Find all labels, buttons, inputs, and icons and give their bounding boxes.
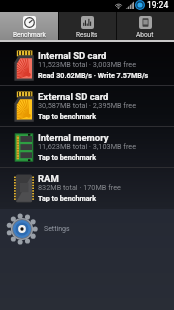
staticText: Tap to benchmark xyxy=(38,112,97,120)
staticText: Tap to benchmark xyxy=(38,153,97,161)
staticText: Internal memory xyxy=(38,132,109,143)
staticText: RAM xyxy=(38,173,59,184)
staticText: Benchmark xyxy=(13,31,46,39)
staticText: About xyxy=(136,31,154,39)
button[interactable]: Internal SD card xyxy=(0,45,174,86)
button[interactable]: Results xyxy=(58,12,116,40)
staticText: Read 30.62MB/s · Write 7.57MB/s xyxy=(38,71,149,79)
button[interactable]: Settings xyxy=(0,209,174,249)
staticText: 30,587MB total · 2,395MB free xyxy=(38,101,137,110)
button[interactable]: RAM xyxy=(0,168,174,208)
button[interactable]: Benchmark xyxy=(0,12,58,40)
staticText: 19:24 xyxy=(147,0,169,10)
staticText: External SD card xyxy=(38,91,109,102)
staticText: Internal SD card xyxy=(38,50,107,61)
button[interactable]: About xyxy=(116,12,174,40)
staticText: Results xyxy=(76,31,98,39)
button[interactable]: Internal memory xyxy=(0,127,174,168)
staticText: Tap to benchmark xyxy=(38,194,97,202)
staticText: Settings xyxy=(44,225,70,233)
staticText: 11,523MB total · 3,003MB free xyxy=(38,60,137,69)
button[interactable]: External SD card xyxy=(0,86,174,127)
staticText: 832MB total · 170MB free xyxy=(38,183,121,192)
staticText: 11,623MB total · 3,103MB free xyxy=(38,142,137,151)
